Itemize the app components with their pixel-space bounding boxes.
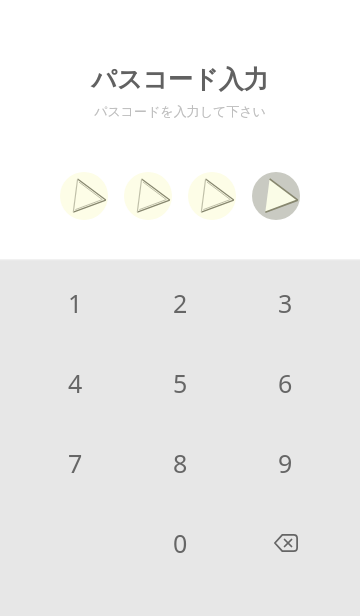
staticText: 0 [173,526,188,560]
staticText: 1 [68,286,83,320]
button[interactable]: 5 [128,343,233,423]
button[interactable]: 7 [22,423,128,503]
staticText: 5 [173,366,188,400]
staticText: 7 [68,446,83,480]
button[interactable]: 6 [233,343,338,423]
staticText: 8 [173,446,188,480]
button[interactable]: 2 [128,263,233,343]
button[interactable]: 8 [128,423,233,503]
staticText: 2 [173,286,188,320]
button[interactable]: 1 [22,263,128,343]
staticText: パスコード入力 [91,64,269,95]
staticText: 6 [278,366,293,400]
button[interactable]: 0 [128,503,233,583]
staticText: 4 [68,366,83,400]
button[interactable]: Delete last digit [233,503,338,583]
button[interactable]: 4 [22,343,128,423]
button[interactable]: 3 [233,263,338,343]
staticText: 3 [278,286,293,320]
button[interactable]: 9 [233,423,338,503]
staticText: パスコードを入力して下さい [94,103,266,119]
staticText: 9 [278,446,293,480]
